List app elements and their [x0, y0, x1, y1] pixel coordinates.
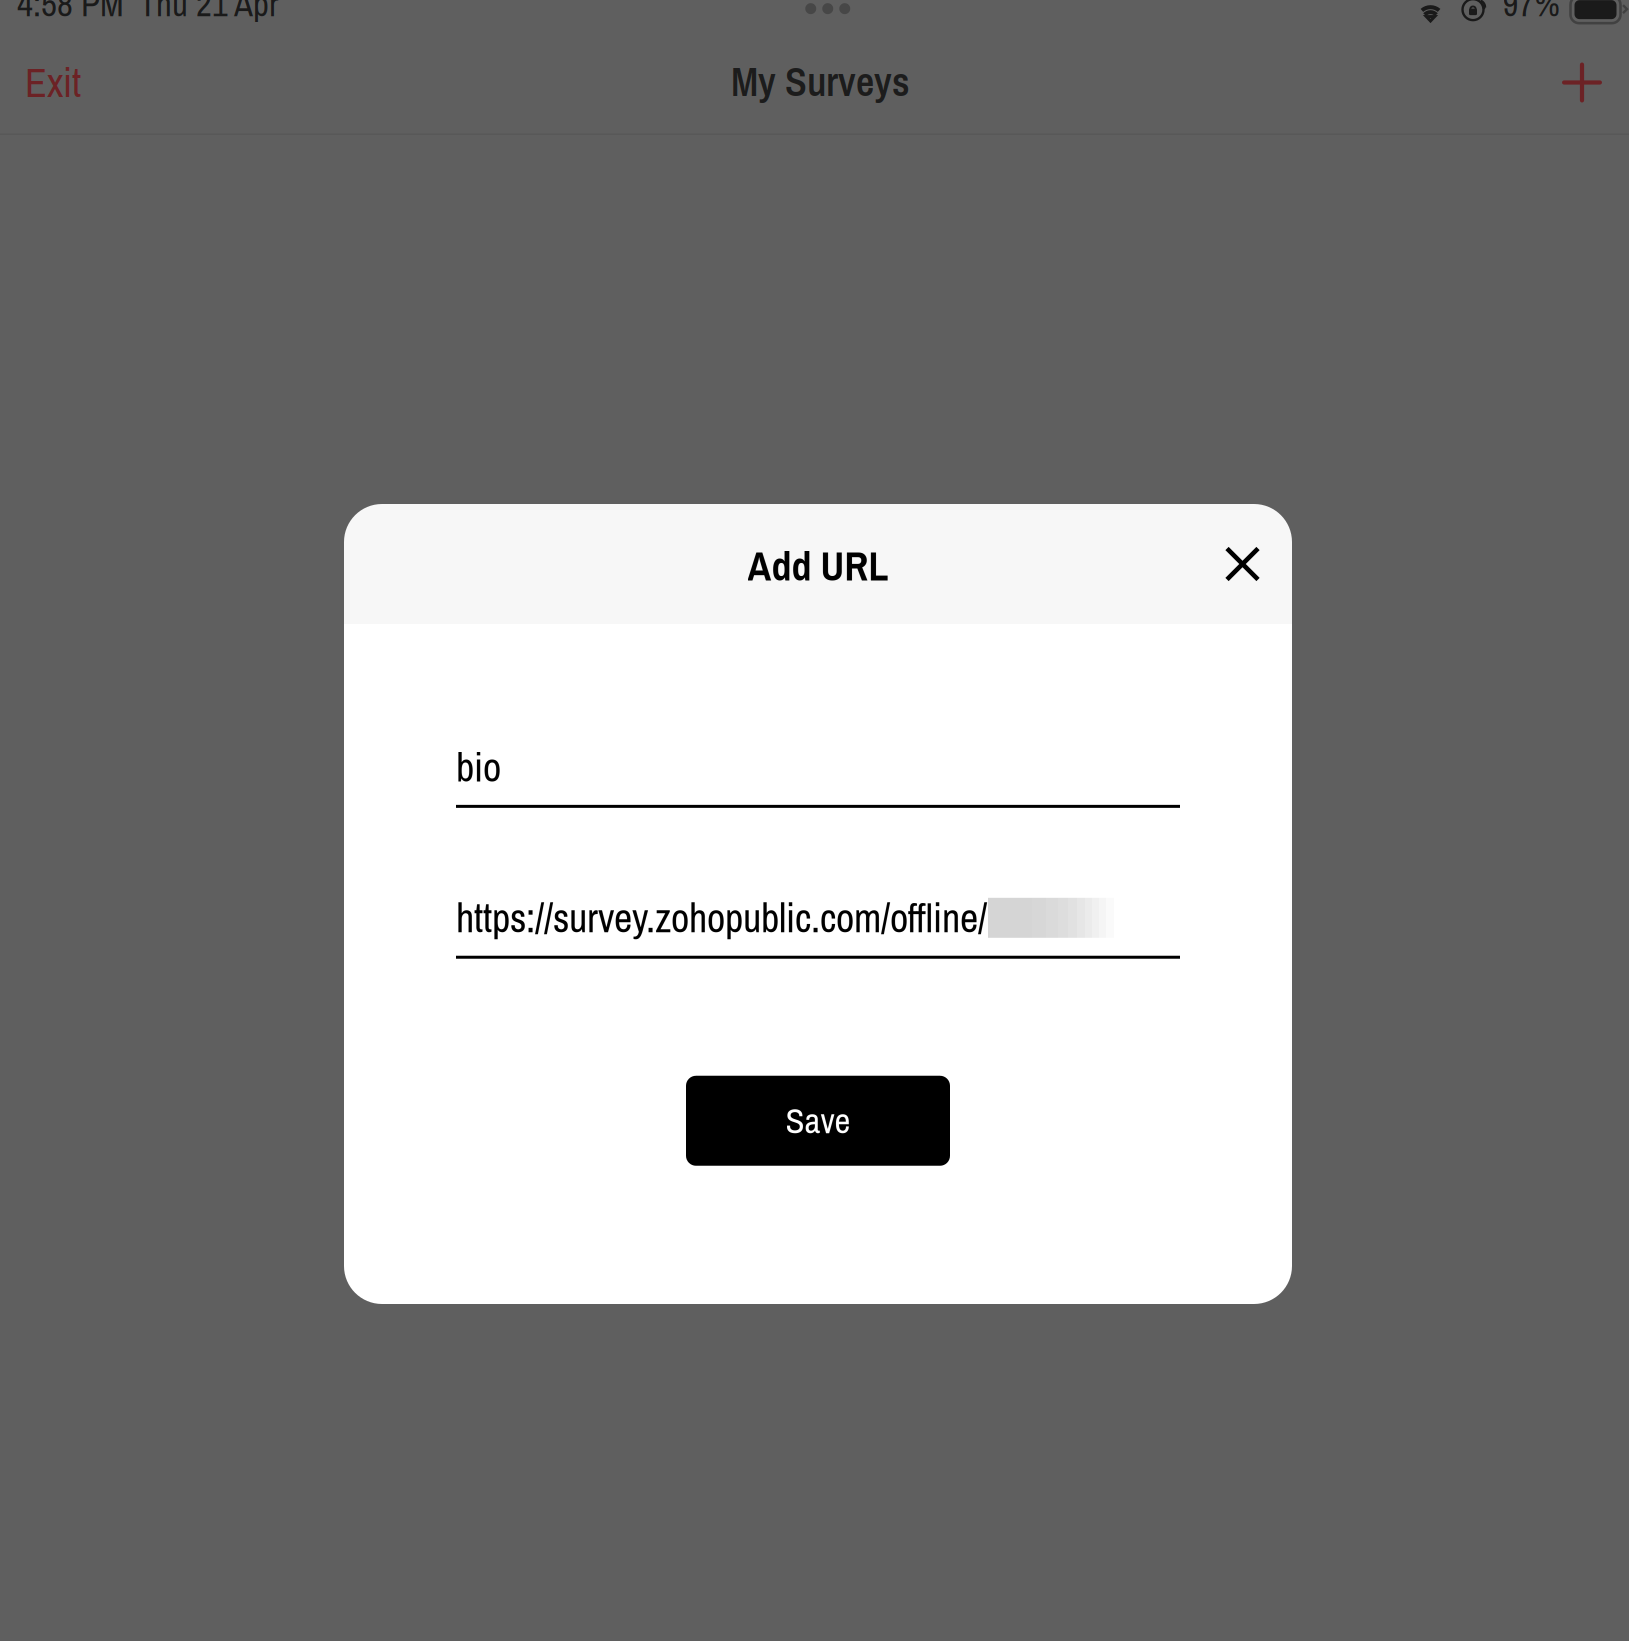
staticText: Add URL	[747, 539, 888, 593]
staticText: My Surveys	[731, 55, 910, 108]
staticText: Exit	[25, 56, 81, 109]
staticText: Thu 21 Apr	[139, 0, 278, 27]
staticText: Save	[785, 1097, 850, 1144]
button[interactable]: Add survey	[1535, 45, 1629, 125]
staticText: 4:58 PM	[17, 0, 124, 27]
staticText: https://survey.zohopublic.com/offline/	[456, 891, 987, 945]
staticText: 97%	[1502, 0, 1559, 27]
button[interactable]: Close	[1209, 530, 1276, 597]
staticText: bio	[456, 740, 501, 794]
button[interactable]: Exit	[0, 39, 106, 132]
button[interactable]: Save	[686, 1076, 950, 1166]
